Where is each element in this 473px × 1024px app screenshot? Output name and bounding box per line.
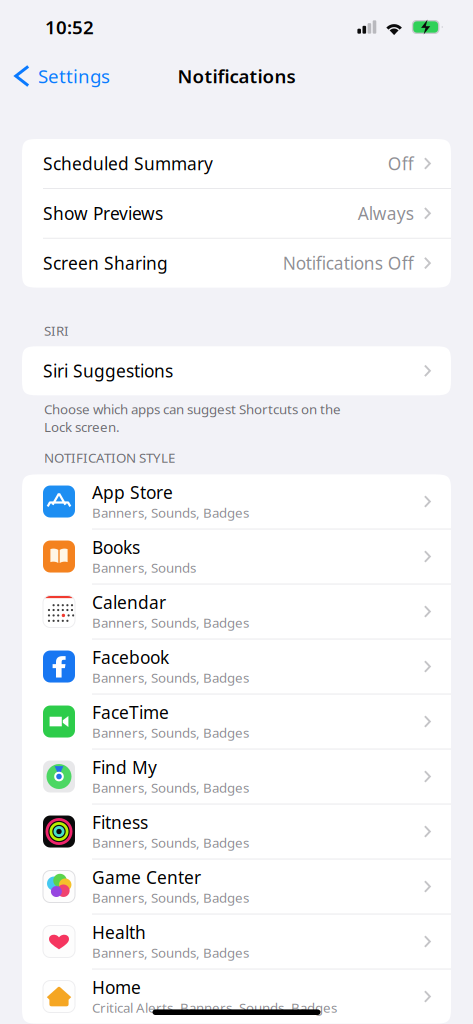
staticText: Home	[92, 976, 141, 999]
button[interactable]: Books	[22, 529, 451, 584]
staticText: Facebook	[92, 646, 169, 669]
button[interactable]: Siri Suggestions	[22, 346, 451, 395]
staticText: App Store	[92, 481, 173, 504]
button[interactable]: Facebook	[22, 639, 451, 694]
staticText: Screen Sharing	[43, 252, 168, 275]
button[interactable]: Screen Sharing	[22, 239, 451, 288]
staticText: Calendar	[92, 591, 166, 614]
staticText: Banners, Sounds, Badges	[92, 889, 249, 906]
staticText: Notifications Off	[283, 252, 414, 275]
staticText: Banners, Sounds, Badges	[92, 669, 249, 686]
staticText: Scheduled Summary	[43, 152, 213, 175]
staticText: Banners, Sounds, Badges	[92, 614, 249, 631]
staticText: Fitness	[92, 811, 148, 834]
button[interactable]: FaceTime	[22, 694, 451, 749]
staticText: Always	[358, 202, 414, 225]
staticText: Off	[388, 152, 414, 175]
button[interactable]: Settings	[5, 50, 119, 102]
staticText: Siri Suggestions	[43, 359, 173, 382]
staticText: Game Center	[92, 866, 201, 889]
staticText: Settings	[38, 64, 110, 88]
button[interactable]: Game Center	[22, 859, 451, 914]
button[interactable]: App Store	[22, 474, 451, 529]
button[interactable]: Show Previews	[22, 189, 451, 238]
button[interactable]: Calendar	[22, 584, 451, 639]
button[interactable]: Find My	[22, 749, 451, 804]
staticText: 10:52	[45, 15, 94, 39]
staticText: Health	[92, 921, 146, 944]
staticText: Banners, Sounds, Badges	[92, 944, 249, 961]
button[interactable]: Fitness	[22, 804, 451, 859]
button[interactable]: Health	[22, 914, 451, 969]
staticText: Banners, Sounds, Badges	[92, 504, 249, 521]
staticText: NOTIFICATION STYLE	[44, 449, 175, 466]
staticText: Banners, Sounds, Badges	[92, 834, 249, 851]
staticText: Critical Alerts, Banners, Sounds, Badges	[92, 999, 337, 1016]
staticText: SIRI	[44, 322, 69, 339]
staticText: Find My	[92, 756, 157, 779]
button[interactable]: Home	[22, 969, 451, 1024]
staticText: Books	[92, 536, 140, 559]
staticText: Choose which apps can suggest Shortcuts …	[44, 400, 341, 436]
button[interactable]: Scheduled Summary	[22, 139, 451, 188]
staticText: Banners, Sounds	[92, 559, 196, 576]
staticText: Show Previews	[43, 202, 163, 225]
staticText: FaceTime	[92, 701, 169, 724]
staticText: Notifications	[177, 64, 295, 88]
staticText: Banners, Sounds, Badges	[92, 724, 249, 741]
staticText: Banners, Sounds, Badges	[92, 779, 249, 796]
